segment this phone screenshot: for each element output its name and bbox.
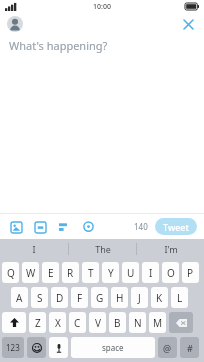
- button[interactable]: Add location: [79, 218, 97, 236]
- button[interactable]: C: [69, 312, 86, 333]
- staticText: H: [116, 291, 124, 305]
- staticText: 140: [134, 221, 148, 232]
- staticText: N: [134, 316, 142, 330]
- staticText: U: [127, 266, 135, 280]
- staticText: #: [187, 342, 193, 354]
- staticText: W: [26, 266, 36, 280]
- button[interactable]: Z: [29, 312, 46, 333]
- button[interactable]: D: [51, 287, 68, 308]
- staticText: I'm: [164, 243, 178, 255]
- staticText: V: [95, 316, 101, 330]
- button[interactable]: 123: [2, 337, 24, 358]
- staticText: L: [177, 291, 183, 305]
- button[interactable]: F: [71, 287, 88, 308]
- staticText: G: [96, 291, 104, 305]
- staticText: T: [88, 266, 94, 280]
- button[interactable]: The: [69, 239, 136, 259]
- staticText: Q: [7, 266, 15, 280]
- button[interactable]: L: [171, 287, 188, 308]
- button[interactable]: W: [22, 262, 39, 283]
- staticText: J: [138, 291, 141, 305]
- button[interactable]: B: [109, 312, 126, 333]
- button[interactable]: Close: [180, 16, 196, 32]
- staticText: O: [167, 266, 175, 280]
- staticText: @: [163, 342, 172, 354]
- staticText: E: [48, 266, 54, 280]
- staticText: 10:00: [93, 2, 111, 12]
- staticText: A: [16, 291, 23, 305]
- button[interactable]: [49, 337, 68, 358]
- button[interactable]: H: [111, 287, 128, 308]
- button[interactable]: S: [31, 287, 48, 308]
- button[interactable]: R: [62, 262, 79, 283]
- staticText: M: [153, 316, 163, 330]
- staticText: What's happening?: [9, 38, 108, 53]
- button[interactable]: space: [71, 337, 155, 358]
- button[interactable]: Y: [102, 262, 119, 283]
- staticText: 123: [6, 342, 20, 353]
- staticText: I: [32, 243, 36, 255]
- button[interactable]: Profile: [7, 16, 23, 32]
- button[interactable]: Q: [2, 262, 19, 283]
- staticText: K: [156, 291, 163, 305]
- button[interactable]: K: [151, 287, 168, 308]
- staticText: X: [55, 316, 61, 330]
- button[interactable]: Add poll: [55, 218, 73, 236]
- staticText: Z: [35, 316, 41, 330]
- staticText: The: [95, 243, 111, 255]
- button[interactable]: [2, 312, 26, 333]
- button[interactable]: M: [149, 312, 166, 333]
- staticText: B: [114, 316, 121, 330]
- button[interactable]: G: [91, 287, 108, 308]
- button[interactable]: E: [42, 262, 59, 283]
- staticText: R: [67, 266, 74, 280]
- staticText: P: [187, 266, 194, 280]
- staticText: C: [74, 316, 81, 330]
- button[interactable]: A: [11, 287, 28, 308]
- button[interactable]: Add GIF: [31, 218, 49, 236]
- button[interactable]: [169, 312, 193, 333]
- staticText: space: [102, 342, 124, 353]
- button[interactable]: Add photo: [7, 218, 25, 236]
- button[interactable]: #: [180, 337, 199, 358]
- button[interactable]: I: [142, 262, 159, 283]
- button[interactable]: P: [182, 262, 199, 283]
- button[interactable]: T: [82, 262, 99, 283]
- button[interactable]: X: [49, 312, 66, 333]
- staticText: D: [56, 291, 64, 305]
- button[interactable]: U: [122, 262, 139, 283]
- staticText: Tweet: [163, 221, 189, 233]
- button[interactable]: O: [162, 262, 179, 283]
- staticText: F: [77, 291, 83, 305]
- button[interactable]: N: [129, 312, 146, 333]
- button[interactable]: @: [158, 337, 177, 358]
- staticText: I: [149, 266, 153, 280]
- button[interactable]: J: [131, 287, 148, 308]
- staticText: Y: [108, 266, 114, 280]
- button[interactable]: I'm: [137, 239, 204, 259]
- button[interactable]: I: [0, 239, 68, 259]
- button[interactable]: Tweet: [155, 218, 197, 235]
- button[interactable]: [27, 337, 46, 358]
- button[interactable]: V: [89, 312, 106, 333]
- staticText: S: [37, 291, 43, 305]
